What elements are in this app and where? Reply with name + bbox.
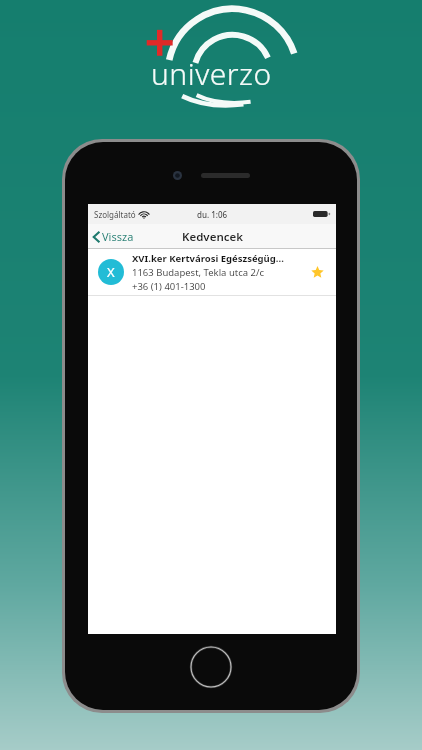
staticText: Kedvencek (182, 229, 243, 245)
staticText: du. 1:06 (197, 209, 228, 220)
staticText: 1163 Budapest, Tekla utca 2/c (132, 266, 265, 279)
staticText: Szolgáltató (94, 209, 136, 220)
staticText: X (107, 263, 115, 281)
staticText: Vissza (102, 229, 134, 244)
button[interactable]: X (88, 249, 336, 295)
button[interactable]: Vissza (88, 226, 142, 247)
staticText: XVI.ker Kertvárosi Egészségüg... (132, 252, 284, 265)
staticText: univerzo (151, 53, 272, 94)
button[interactable]: Kedvenc (306, 261, 328, 283)
staticText: +36 (1) 401-1300 (132, 280, 206, 293)
